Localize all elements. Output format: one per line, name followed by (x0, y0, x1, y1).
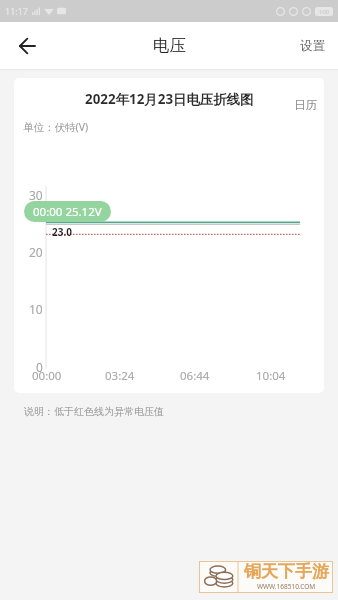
staticText: 11:17 (5, 5, 29, 17)
staticText: 电压 (153, 35, 186, 56)
button[interactable]: 日历 (283, 78, 324, 124)
staticText: 日历 (294, 98, 317, 112)
staticText: 100 (319, 8, 330, 16)
staticText: 30 (29, 187, 43, 203)
staticText: 2022年12月23日电压折线图 (85, 90, 254, 108)
staticText: 06:44 (180, 368, 210, 384)
staticText: 03:24 (105, 368, 135, 384)
button[interactable]: 设置 (287, 25, 338, 67)
staticText: 00:00 (32, 368, 62, 384)
staticText: 10:04 (256, 368, 286, 384)
staticText: 20 (29, 244, 43, 260)
staticText: 00:00 25.12V (33, 204, 102, 220)
staticText: 0 (36, 359, 43, 375)
staticText: 铜天下手游 (244, 561, 329, 582)
staticText: 10 (29, 301, 43, 317)
staticText: 说明：低于红色线为异常电压值 (24, 405, 164, 418)
staticText: 23.0 (52, 225, 72, 238)
staticText: WWW.168510.COM (257, 582, 316, 591)
button[interactable]: Back (4, 23, 49, 68)
staticText: 单位：伏特(V) (23, 120, 89, 134)
staticText: 设置 (300, 38, 325, 54)
